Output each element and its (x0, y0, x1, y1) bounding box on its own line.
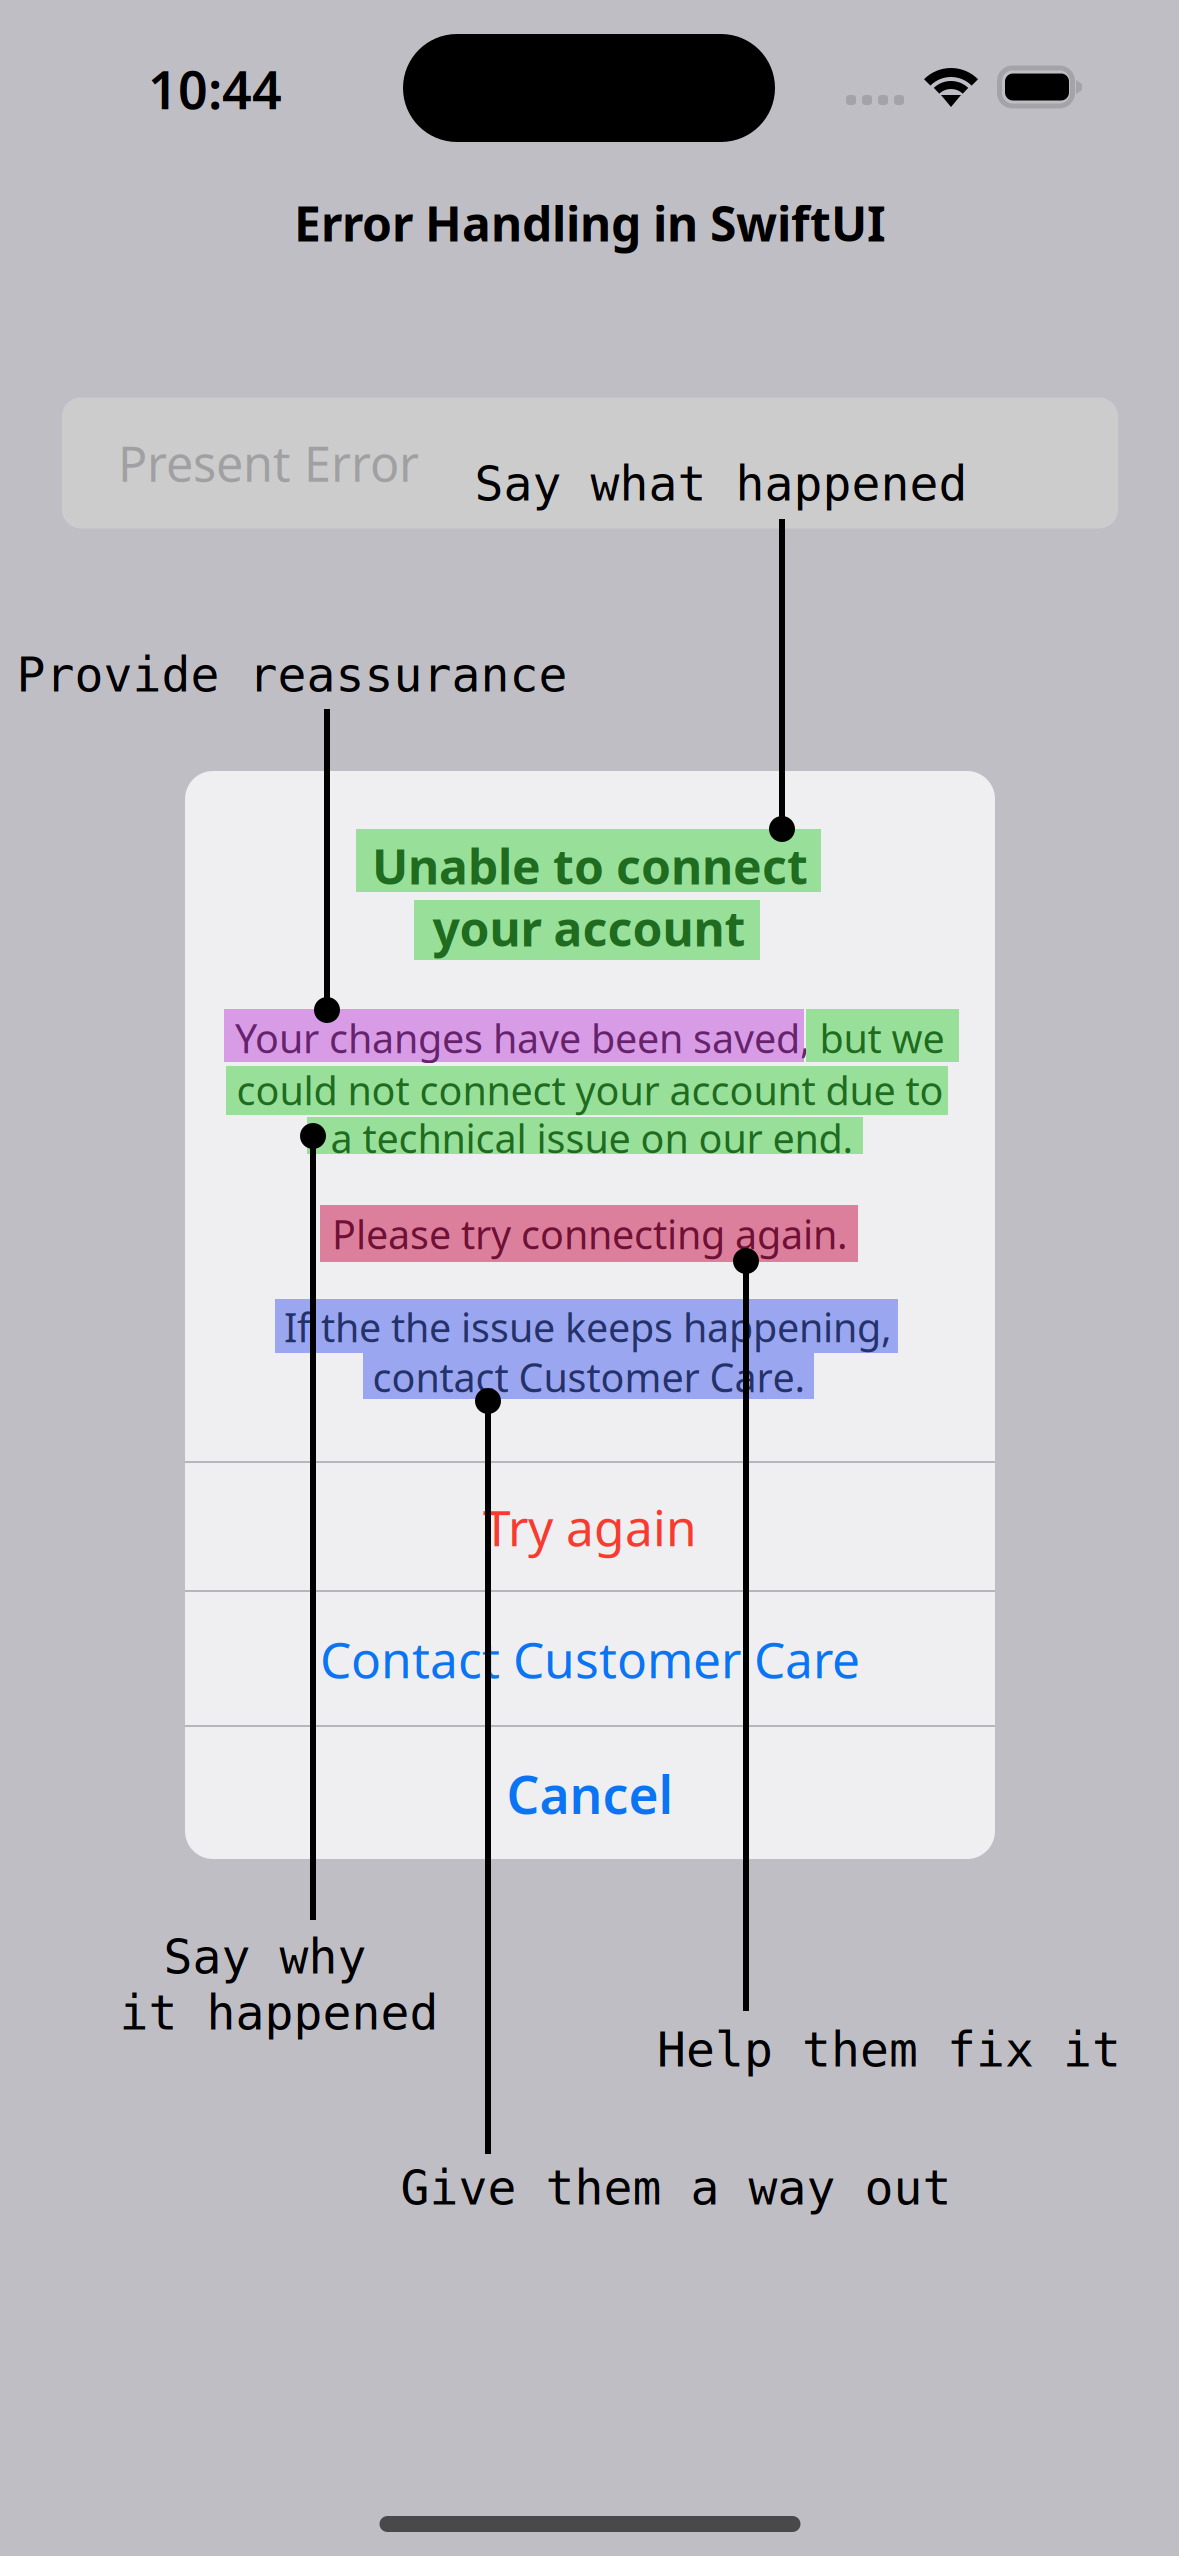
staticText: Say why (163, 1929, 366, 1985)
staticText: could not connect your account due to (236, 1063, 943, 1117)
staticText: Give them a way out (400, 2160, 951, 2216)
staticText: If the the issue keeps happening, (284, 1300, 892, 1354)
staticText: Present Error (118, 430, 419, 496)
staticText: Your changes have been saved, (235, 1011, 811, 1065)
staticText: Try again (483, 1493, 697, 1561)
staticText: Cancel (506, 1759, 673, 1829)
staticText: a technical issue on our end. (330, 1111, 853, 1165)
staticText: Say what happened (474, 456, 967, 512)
staticText: Contact Customer Care (320, 1625, 860, 1693)
button[interactable]: Cancel (185, 1727, 995, 1861)
staticText: Provide reassurance (16, 647, 567, 703)
staticText: Please try connecting again. (332, 1207, 848, 1261)
button[interactable]: Try again (185, 1462, 995, 1591)
staticText: your account (432, 895, 745, 961)
staticText: but we (819, 1011, 944, 1065)
button[interactable]: Contact Customer Care (185, 1591, 995, 1726)
staticText: Help them fix it (657, 2022, 1121, 2078)
staticText: Unable to connect (372, 833, 808, 899)
staticText: it happened (119, 1985, 438, 2041)
staticText: contact Customer Care. (372, 1350, 805, 1404)
staticText: Error Handling in SwiftUI (294, 190, 886, 256)
button[interactable]: Present Error (62, 397, 1118, 528)
staticText: 10:44 (148, 54, 282, 124)
